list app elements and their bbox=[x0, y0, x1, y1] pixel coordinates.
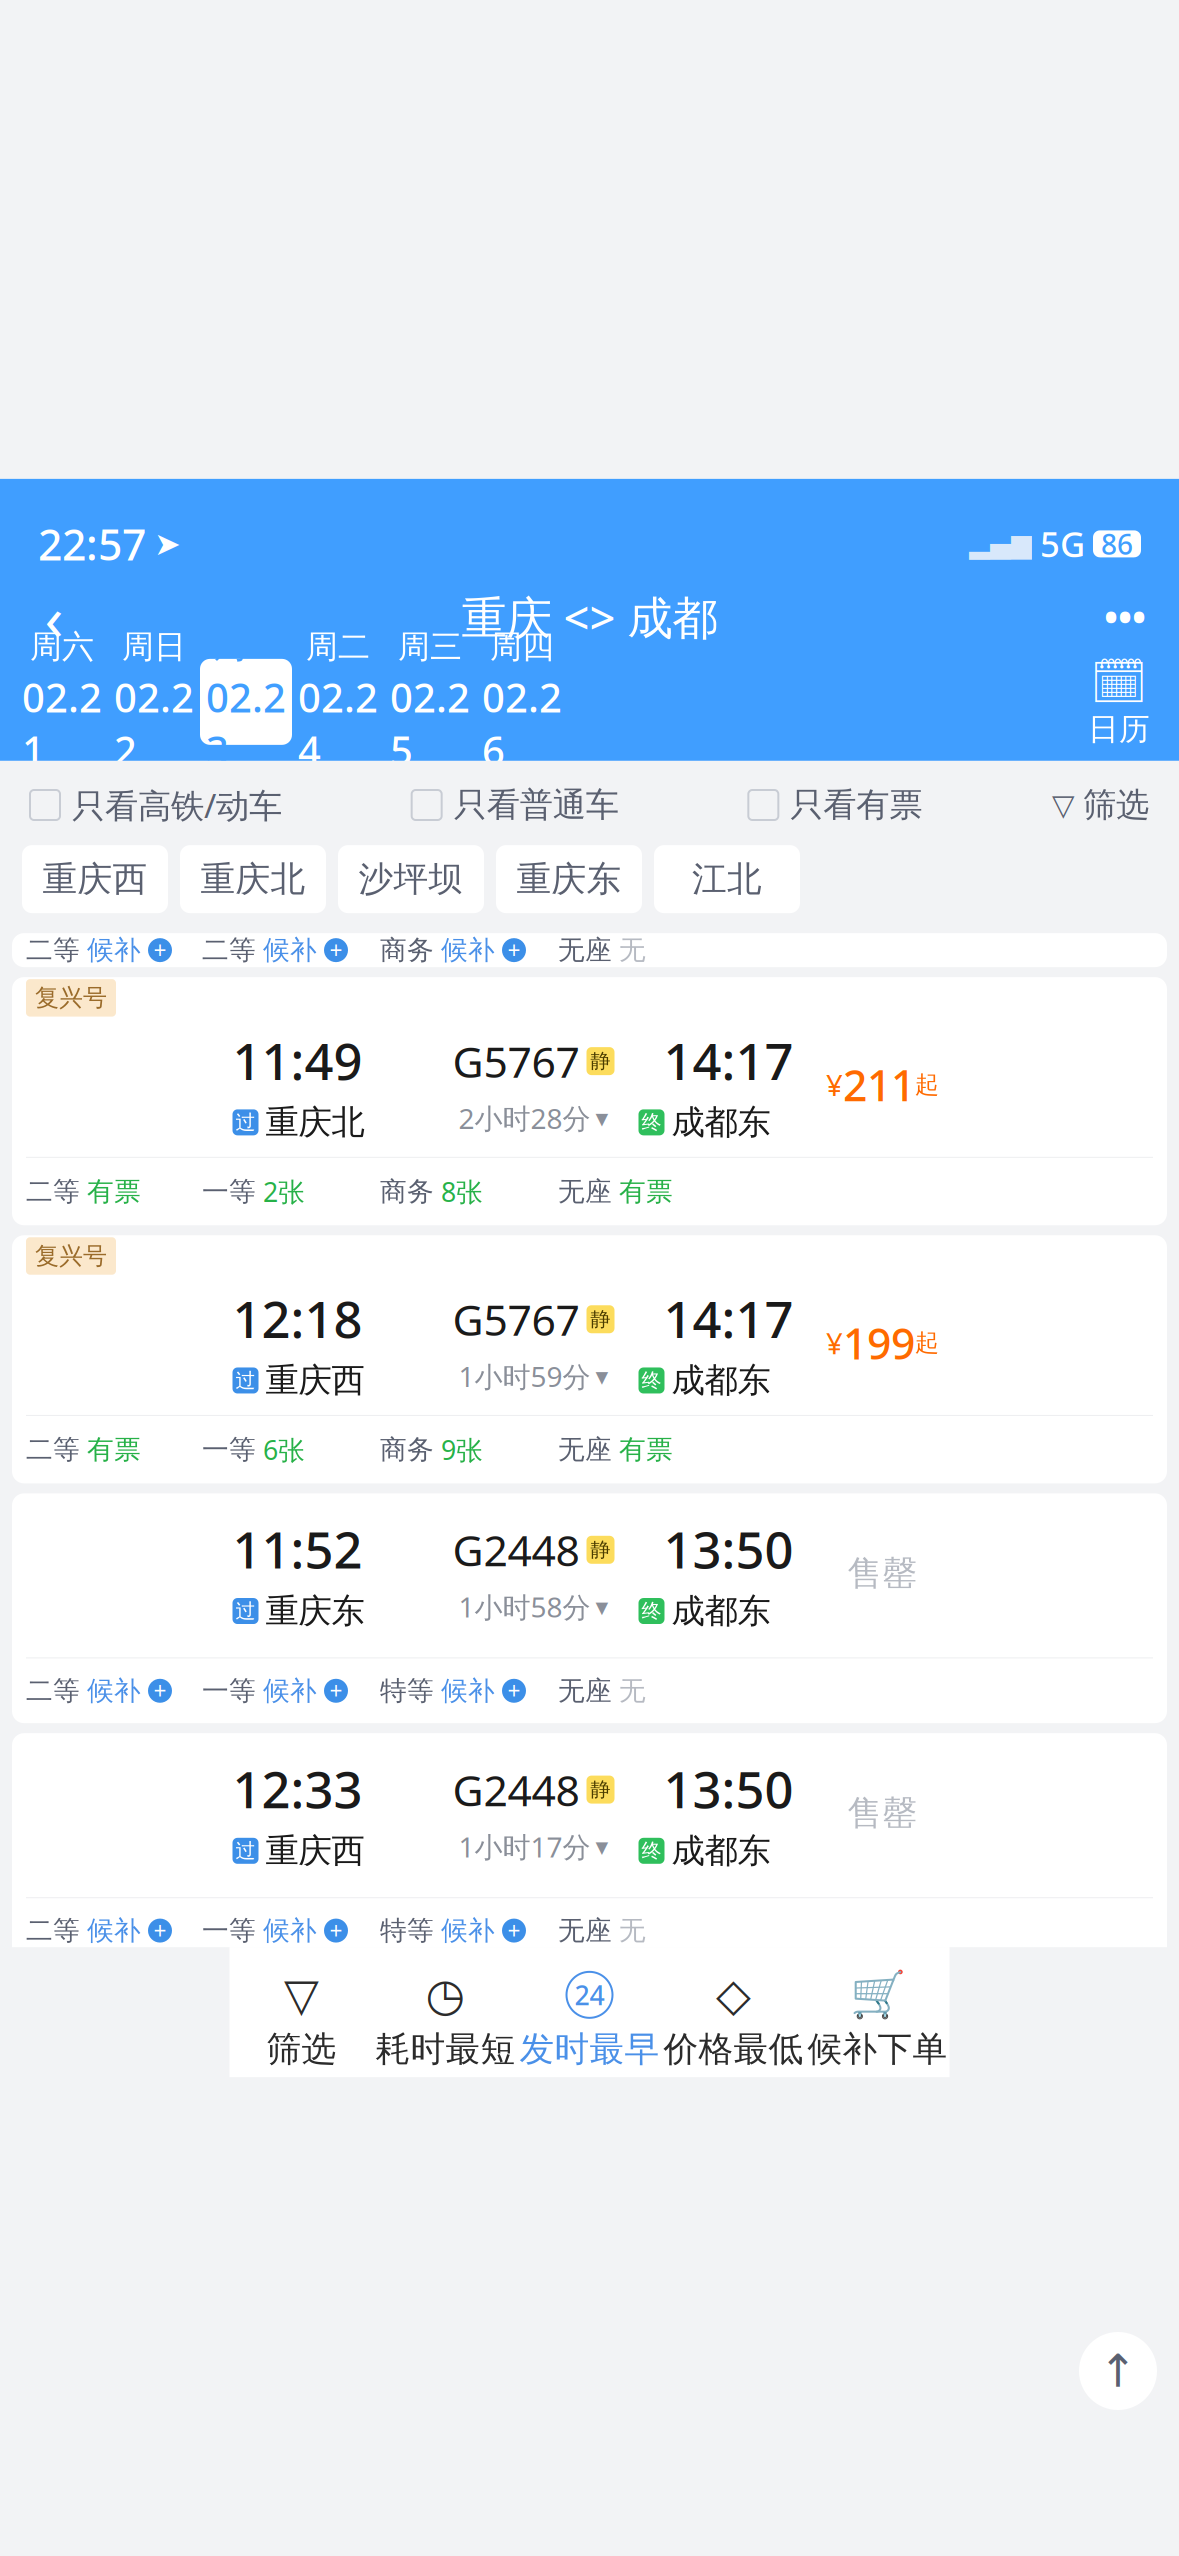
button[interactable]: ▽ bbox=[1052, 784, 1149, 825]
staticText: 12:33 bbox=[232, 1755, 362, 1822]
button[interactable]: ▽ bbox=[229, 1972, 373, 2070]
button[interactable]: 复兴号 bbox=[12, 1973, 1167, 2203]
staticText: 候补 bbox=[87, 1914, 141, 1947]
staticText: 复兴号 bbox=[35, 983, 107, 1013]
staticText: + bbox=[507, 1676, 520, 1706]
staticText: 静 bbox=[590, 1307, 610, 1332]
staticText: 重庆西 bbox=[265, 1360, 364, 1401]
staticText: 8张 bbox=[441, 1174, 483, 1209]
button[interactable]: 周四 bbox=[476, 659, 568, 745]
staticText: 无座 bbox=[558, 1674, 612, 1707]
staticText: 商务 bbox=[380, 934, 434, 967]
staticText: 211 bbox=[843, 1056, 915, 1113]
staticText: 价格最低 bbox=[663, 2028, 803, 2070]
staticText: + bbox=[153, 1915, 166, 1946]
staticText: + bbox=[507, 1915, 520, 1946]
staticText: ¥ bbox=[826, 1323, 843, 1362]
staticText: 成都东 bbox=[671, 1360, 770, 1401]
staticText: 日历 bbox=[1088, 710, 1150, 748]
button[interactable]: 返回 bbox=[18, 585, 90, 649]
staticText: + bbox=[329, 1915, 342, 1946]
staticText: 02.21 bbox=[22, 670, 102, 777]
button[interactable]: 周日 bbox=[108, 659, 200, 745]
button[interactable]: 重庆西 bbox=[22, 845, 168, 913]
staticText: 24 bbox=[574, 1977, 604, 2012]
staticText: 02.23 bbox=[206, 670, 286, 777]
button[interactable]: 日历 bbox=[1075, 659, 1163, 745]
staticText: 复兴号 bbox=[35, 1241, 107, 1271]
button[interactable]: 复兴号 bbox=[12, 1235, 1167, 1483]
staticText: 1小时58分 bbox=[458, 1588, 590, 1625]
staticText: 候补下单 bbox=[807, 2028, 947, 2070]
staticText: 周四 bbox=[490, 627, 554, 666]
staticText: 终 bbox=[641, 1838, 661, 1863]
button[interactable]: 江北 bbox=[654, 845, 800, 913]
staticText: 2小时28分 bbox=[458, 1099, 590, 1137]
button[interactable]: 🛒 bbox=[805, 1972, 949, 2070]
staticText: 🛒 bbox=[849, 1969, 905, 2021]
button[interactable]: ◇ bbox=[661, 1972, 805, 2070]
staticText: 一等 bbox=[202, 1175, 256, 1208]
button[interactable]: 12:33 bbox=[12, 1733, 1167, 1963]
button[interactable]: 沙坪坝 bbox=[338, 845, 484, 913]
staticText: 只看高铁/动车 bbox=[72, 783, 282, 827]
button[interactable]: 周一 bbox=[200, 659, 292, 745]
staticText: 候补 bbox=[87, 934, 141, 967]
staticText: 候补 bbox=[441, 934, 495, 967]
staticText: 一等 bbox=[202, 1433, 256, 1466]
staticText: 终 bbox=[641, 1110, 661, 1135]
button[interactable]: 复兴号 bbox=[12, 977, 1167, 1225]
staticText: 二等 bbox=[26, 1914, 80, 1947]
staticText: 13:07 bbox=[663, 2047, 793, 2115]
staticText: 起 bbox=[915, 1328, 939, 1358]
staticText: 筛选 bbox=[266, 2028, 336, 2070]
staticText: 重庆西 bbox=[42, 858, 147, 900]
staticText: 5G bbox=[1040, 521, 1085, 567]
button[interactable]: 11:52 bbox=[12, 1493, 1167, 1723]
staticText: 过 bbox=[235, 1110, 255, 1135]
staticText: ▂▄▆ bbox=[969, 529, 1032, 559]
button[interactable]: 更多 bbox=[1089, 585, 1161, 649]
staticText: ▾ bbox=[595, 1362, 608, 1391]
staticText: 筛选 bbox=[1083, 784, 1149, 825]
button[interactable]: 只看有票 bbox=[748, 784, 922, 825]
button[interactable]: 重庆东 bbox=[496, 845, 642, 913]
staticText: 一等 bbox=[202, 1674, 256, 1707]
staticText: 成都东 bbox=[671, 1591, 770, 1631]
staticText: 成都东 bbox=[671, 1830, 770, 1871]
staticText: 1小时17分 bbox=[458, 1828, 590, 1865]
staticText: ↑ bbox=[1099, 2345, 1137, 2397]
staticText: 过 bbox=[235, 1368, 255, 1393]
staticText: 无座 bbox=[558, 1175, 612, 1208]
staticText: 候补 bbox=[263, 934, 317, 967]
button[interactable]: ◷ bbox=[373, 1972, 517, 2070]
button[interactable]: 只看普通车 bbox=[412, 784, 619, 825]
staticText: 9张 bbox=[441, 1432, 483, 1467]
button[interactable]: 重庆北 bbox=[180, 845, 326, 913]
staticText: 13:50 bbox=[663, 1515, 793, 1583]
button[interactable]: 周六 bbox=[16, 659, 108, 745]
staticText: 重庆北 bbox=[200, 858, 305, 900]
button[interactable]: 24 bbox=[517, 1972, 661, 2070]
staticText: 发时最早 bbox=[519, 2028, 659, 2070]
staticText: 耗时最短 bbox=[375, 2028, 515, 2070]
staticText: 二等 bbox=[202, 934, 256, 967]
staticText: 终 bbox=[641, 1599, 661, 1623]
staticText: ▾ bbox=[595, 1832, 608, 1861]
staticText: 有票 bbox=[87, 1175, 141, 1208]
staticText: 重庆东 bbox=[516, 858, 621, 900]
staticText: 重庆东 bbox=[265, 1591, 364, 1631]
staticText: 无座 bbox=[558, 1914, 612, 1947]
staticText: 1小时59分 bbox=[458, 1358, 590, 1395]
button[interactable]: Scroll to top bbox=[1079, 2332, 1157, 2410]
button[interactable]: 周三 bbox=[384, 659, 476, 745]
button[interactable]: 周二 bbox=[292, 659, 384, 745]
button[interactable]: 只看高铁/动车 bbox=[30, 783, 282, 827]
staticText: 成都东 bbox=[671, 1102, 770, 1143]
